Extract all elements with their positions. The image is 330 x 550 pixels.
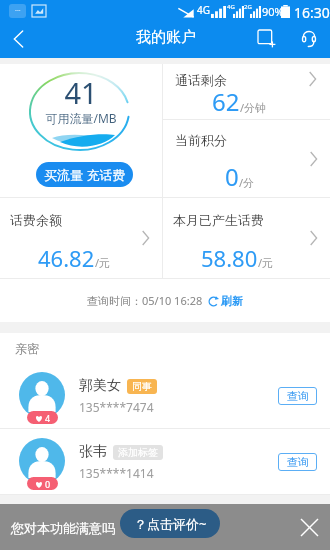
staticText: 0: [45, 478, 51, 490]
button[interactable]: 0: [0, 429, 330, 494]
staticText: 添加标签: [118, 446, 158, 459]
staticText: 41: [52, 73, 110, 112]
button[interactable]: 4: [0, 363, 330, 428]
button[interactable]: Close: [294, 512, 324, 542]
staticText: 4: [45, 412, 51, 424]
staticText: 135****7474: [79, 399, 154, 415]
staticText: 16:30: [294, 3, 330, 22]
staticText: 58.80: [201, 243, 258, 273]
staticText: ？点击评价~: [134, 515, 207, 533]
staticText: 2G: [244, 3, 252, 11]
button[interactable]: 刷新: [208, 294, 243, 308]
staticText: 亲密: [15, 341, 39, 356]
staticText: 买流量 充话费: [44, 166, 126, 184]
staticText: /元: [258, 255, 274, 270]
staticText: /元: [95, 255, 111, 270]
staticText: ···: [15, 6, 21, 16]
staticText: 本月已产生话费: [173, 212, 264, 228]
staticText: 张韦: [79, 443, 107, 461]
staticText: /分钟: [240, 100, 267, 115]
button[interactable]: 查询: [278, 387, 317, 405]
staticText: 我的账户: [136, 28, 196, 47]
button[interactable]: 话费余额: [0, 198, 162, 278]
staticText: 通话剩余: [175, 72, 227, 88]
staticText: 同事: [132, 380, 152, 393]
staticText: 4G: [227, 3, 235, 11]
button[interactable]: ？点击评价~: [120, 509, 220, 538]
staticText: 90%: [262, 4, 284, 19]
staticText: 135****1414: [79, 465, 154, 481]
staticText: 46.82: [38, 243, 95, 273]
button[interactable]: 本月已产生话费: [163, 198, 330, 278]
staticText: 查询: [287, 389, 309, 403]
staticText: 话费余额: [10, 212, 62, 228]
button[interactable]: 当前积分: [163, 120, 330, 197]
staticText: 刷新: [221, 294, 243, 308]
staticText: 郭美女: [79, 377, 121, 395]
button[interactable]: 查询: [278, 453, 317, 471]
staticText: 查询时间：05/10 16:28: [87, 293, 203, 308]
staticText: 4G: [197, 3, 210, 17]
staticText: 当前积分: [175, 132, 227, 148]
button[interactable]: Customer service: [288, 22, 330, 56]
button[interactable]: Back: [0, 22, 36, 56]
staticText: 62: [212, 85, 240, 118]
button[interactable]: 买流量 充话费: [36, 162, 133, 187]
staticText: 您对本功能满意吗: [11, 520, 115, 536]
staticText: /分: [239, 175, 255, 190]
button[interactable]: New window: [246, 22, 288, 56]
button[interactable]: 通话剩余: [163, 64, 330, 119]
staticText: 0: [225, 160, 239, 193]
staticText: 查询: [287, 455, 309, 469]
staticText: 可用流量/MB: [32, 110, 130, 126]
